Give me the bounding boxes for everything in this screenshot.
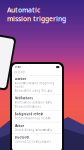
staticText: Motion <box>15 124 25 128</box>
staticText: Allow while using the app <box>15 89 53 92</box>
staticText: Background refresh <box>15 112 44 116</box>
staticText: Detect driving automatically <box>15 128 52 132</box>
staticText: Notifications <box>15 97 33 100</box>
staticText: Bluetooth <box>15 136 30 139</box>
staticText: ▮▮▮ <box>56 65 59 68</box>
staticText: Allow notifications <box>15 105 41 108</box>
staticText: Automatic mission triggering needs <box>15 81 55 88</box>
staticText: Search <box>18 70 26 74</box>
staticText: Location <box>15 77 27 81</box>
staticText: Automatic mission triggering <box>7 5 66 23</box>
staticText: Keeps missions up to date <box>15 116 52 120</box>
staticText: 9:41 <box>15 65 22 68</box>
staticText: Connect to nearby devices <box>15 140 51 143</box>
staticText: Alerts when a mission starts <box>15 101 52 104</box>
